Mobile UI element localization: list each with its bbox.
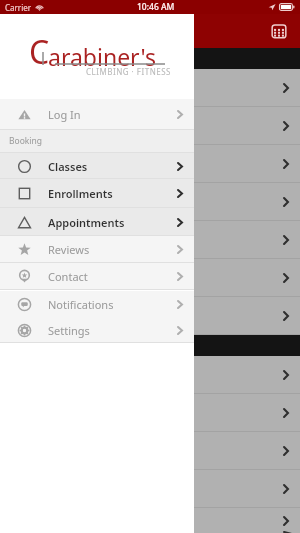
staticText: Log In <box>48 107 81 122</box>
button[interactable] <box>0 221 300 258</box>
staticText: 10:46 AM <box>137 1 175 13</box>
button[interactable] <box>0 470 300 507</box>
staticText: Classes <box>48 159 88 174</box>
staticText: Reviews <box>48 242 90 257</box>
button[interactable]: Contact <box>0 263 194 290</box>
staticText: Carrier <box>5 2 32 13</box>
button[interactable] <box>0 183 300 220</box>
button[interactable]: Settings <box>0 317 194 343</box>
staticText: Enrollments <box>48 186 113 201</box>
button[interactable]: Log In <box>0 99 194 130</box>
staticText: Thu, Jan 19 <box>8 53 55 65</box>
staticText: Booking <box>9 135 43 147</box>
staticText: arabiner's <box>48 41 157 72</box>
staticText: CLIMBING · FITNESS <box>86 66 171 77</box>
button[interactable] <box>0 508 300 533</box>
button[interactable] <box>0 432 300 469</box>
button[interactable] <box>0 297 300 334</box>
button[interactable]: Reviews <box>0 236 194 263</box>
button[interactable]: Appointments <box>0 208 194 236</box>
button[interactable]: Enrollments <box>0 179 194 208</box>
button[interactable] <box>0 356 300 393</box>
button[interactable] <box>0 69 300 106</box>
button[interactable] <box>0 259 300 296</box>
staticText: Contact <box>48 269 88 284</box>
button[interactable]: Calendar <box>270 22 288 40</box>
button[interactable]: Classes <box>0 153 194 179</box>
staticText: C <box>29 30 50 74</box>
staticText: Settings <box>48 323 90 338</box>
button[interactable]: Notifications <box>0 291 194 318</box>
button[interactable] <box>0 394 300 431</box>
button[interactable] <box>0 145 300 182</box>
button[interactable] <box>0 107 300 144</box>
staticText: Fri, Jan 20 <box>8 340 50 352</box>
staticText: Notifications <box>48 297 114 312</box>
staticText: Appointments <box>48 215 125 230</box>
